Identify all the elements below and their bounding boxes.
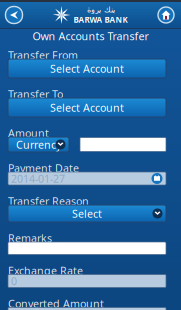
staticText: Remarks <box>8 231 52 242</box>
staticText: Select Account <box>50 100 124 115</box>
button[interactable]: Select Account <box>8 59 166 78</box>
button[interactable]: 2014-01-27 <box>8 172 166 185</box>
button[interactable] <box>8 242 166 254</box>
staticText: Transfer Reason <box>8 194 89 205</box>
button[interactable]: Select Account <box>8 98 166 117</box>
staticText: بنك بروة <box>86 5 114 14</box>
staticText: Select Account <box>50 61 124 76</box>
staticText: Converted Amount <box>8 296 104 307</box>
staticText: Payment Date <box>8 161 79 172</box>
staticText: Transfer To <box>8 87 63 98</box>
staticText: 0 <box>11 274 17 288</box>
staticText: Amount <box>8 126 49 137</box>
staticText: Select <box>72 206 102 221</box>
button[interactable]: Select <box>8 205 166 222</box>
staticText: Exchange Rate <box>8 263 83 274</box>
button[interactable]: 0 <box>8 274 166 287</box>
button[interactable]: Currency <box>8 137 69 152</box>
staticText: Own Accounts Transfer <box>32 29 148 43</box>
button[interactable] <box>80 137 166 151</box>
staticText: Currency <box>16 137 61 152</box>
button[interactable]: Back <box>2 2 26 28</box>
staticText: BARWA BANK <box>73 14 127 25</box>
button[interactable]: Home <box>154 2 178 28</box>
button[interactable] <box>8 307 166 310</box>
staticText: 2014-01-27 <box>11 171 65 186</box>
staticText: Transfer From <box>8 48 78 59</box>
